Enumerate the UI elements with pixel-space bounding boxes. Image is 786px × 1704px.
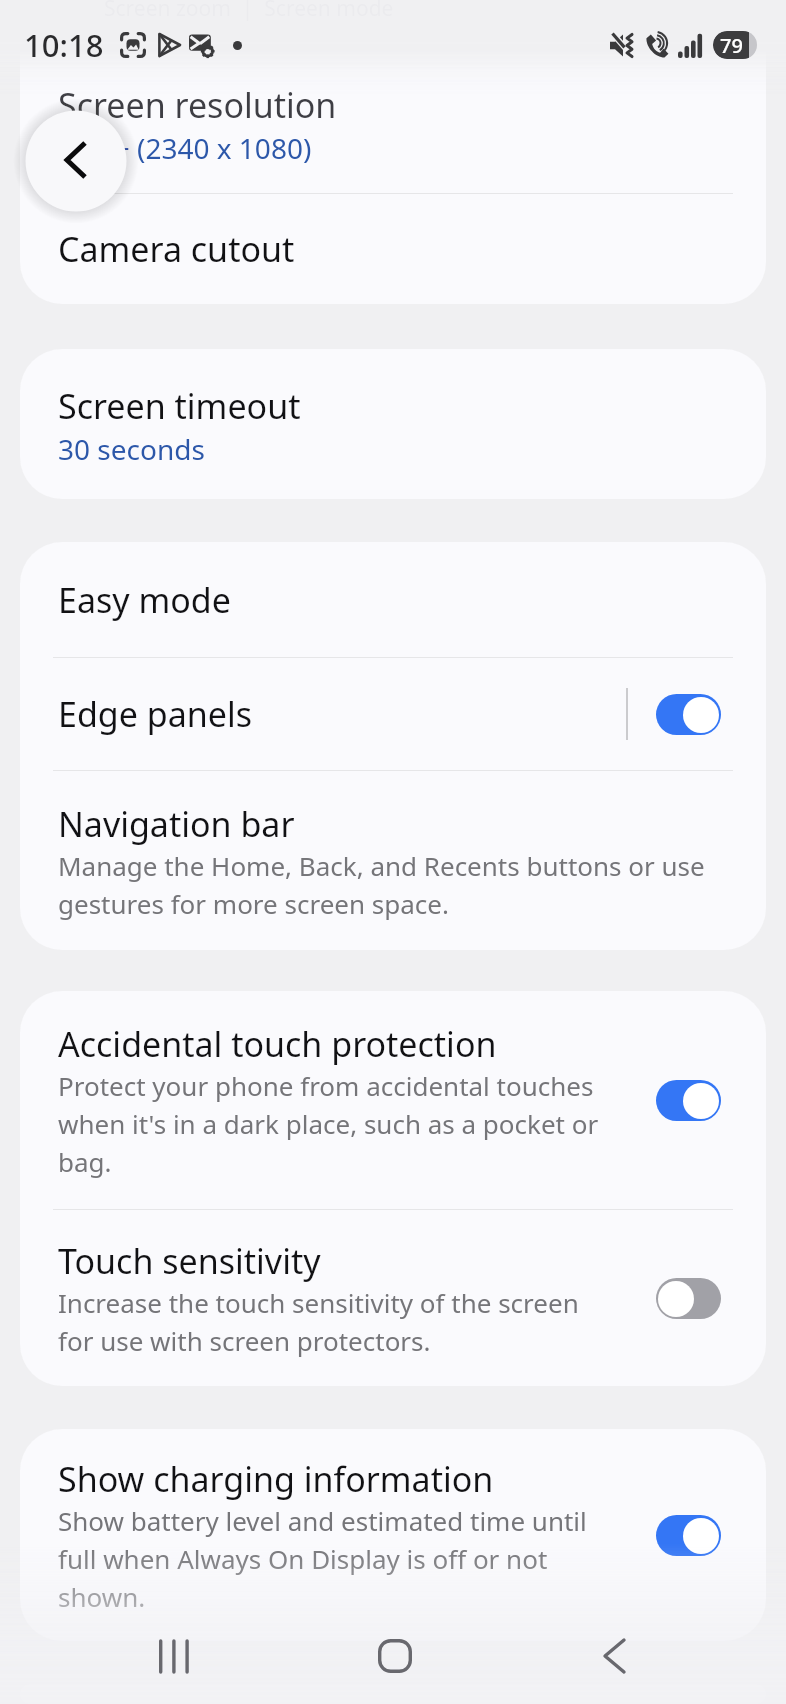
staticText: FHD+ (2340 x 1080) (58, 129, 312, 167)
staticText: Easy mode (58, 577, 231, 623)
staticText: Screen timeout (58, 383, 301, 429)
staticText: Edge panels (58, 691, 252, 737)
staticText: Manage the Home, Back, and Recents butto… (58, 848, 706, 921)
staticText: 30 seconds (58, 430, 205, 468)
staticText: Screen resolution (58, 82, 337, 128)
button[interactable]: Recent apps (114, 1608, 234, 1704)
button[interactable]: Switch off (656, 1278, 721, 1319)
staticText: Camera cutout (58, 226, 295, 272)
button[interactable]: Home (335, 1608, 455, 1704)
button[interactable]: Navigate up (16, 100, 136, 220)
button[interactable]: Back (554, 1608, 674, 1704)
staticText: Increase the touch sensitivity of the sc… (58, 1285, 611, 1358)
staticText: 79 (720, 32, 743, 59)
staticText: Touch sensitivity (58, 1238, 321, 1284)
staticText: Accidental touch protection (58, 1021, 497, 1067)
button[interactable]: Switch on (656, 694, 721, 735)
staticText: Show charging information (58, 1456, 494, 1502)
staticText: Protect your phone from accidental touch… (58, 1068, 611, 1179)
staticText: Show battery level and estimated time un… (58, 1503, 611, 1614)
staticText: 10:18 (24, 24, 104, 66)
button[interactable]: Switch on (656, 1515, 721, 1556)
button[interactable]: Switch on (656, 1080, 721, 1121)
staticText: Navigation bar (58, 801, 295, 847)
